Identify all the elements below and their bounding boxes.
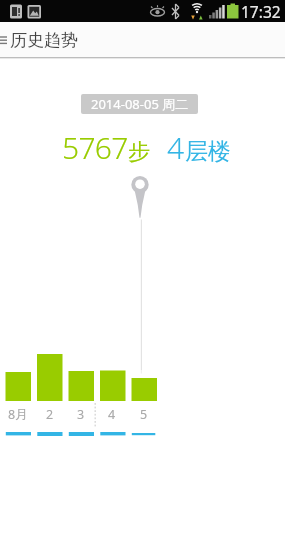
button[interactable]: 4 bbox=[96, 406, 128, 422]
staticText: 历史趋势 bbox=[10, 30, 78, 51]
staticText: 2 bbox=[46, 406, 54, 422]
staticText: 4 bbox=[108, 406, 116, 422]
button[interactable]: 2 bbox=[34, 406, 66, 422]
button[interactable]: 8月 bbox=[2, 406, 34, 422]
staticText: 4 bbox=[167, 127, 185, 161]
button[interactable]: 历史趋势 bbox=[0, 22, 285, 58]
staticText: 层楼 bbox=[185, 137, 231, 166]
button[interactable]: 5 bbox=[128, 406, 160, 422]
staticText: 17:32 bbox=[241, 1, 281, 22]
button[interactable]: 2014-08-05 周二 bbox=[81, 94, 198, 114]
staticText: 3 bbox=[77, 406, 85, 422]
staticText: 5767 bbox=[62, 127, 128, 161]
button[interactable]: 3 bbox=[65, 406, 97, 422]
staticText: 步 bbox=[128, 138, 150, 166]
staticText: 2014-08-05 周二 bbox=[91, 95, 189, 113]
staticText: 8月 bbox=[8, 406, 28, 422]
staticText: 5 bbox=[140, 406, 148, 422]
